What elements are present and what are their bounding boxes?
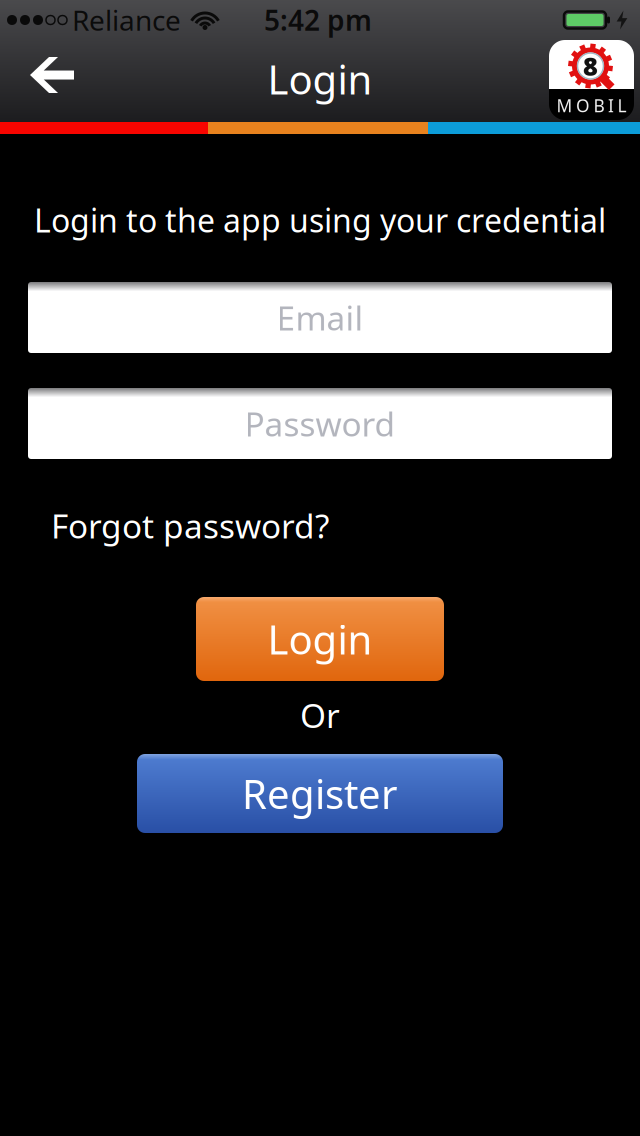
- staticText: Forgot password?: [51, 503, 329, 548]
- staticText: Login to the app using your credential: [34, 199, 606, 241]
- staticText: Or: [300, 693, 340, 737]
- staticText: MOBIL: [556, 94, 626, 117]
- button[interactable]: Back: [0, 55, 84, 107]
- button[interactable]: Email: [28, 282, 612, 353]
- staticText: Register: [242, 767, 398, 820]
- button[interactable]: 8 Mobil: [549, 41, 640, 121]
- button[interactable]: Register: [137, 754, 503, 833]
- button[interactable]: Login: [196, 597, 444, 681]
- staticText: Login: [267, 52, 372, 105]
- button[interactable]: Forgot password?: [51, 503, 329, 548]
- button[interactable]: Password: [28, 388, 612, 459]
- staticText: Password: [244, 401, 395, 446]
- staticText: Login: [267, 612, 372, 665]
- staticText: 8: [583, 49, 598, 83]
- staticText: Email: [276, 295, 363, 340]
- staticText: Reliance: [72, 1, 181, 39]
- staticText: 5:42 pm: [264, 1, 372, 39]
